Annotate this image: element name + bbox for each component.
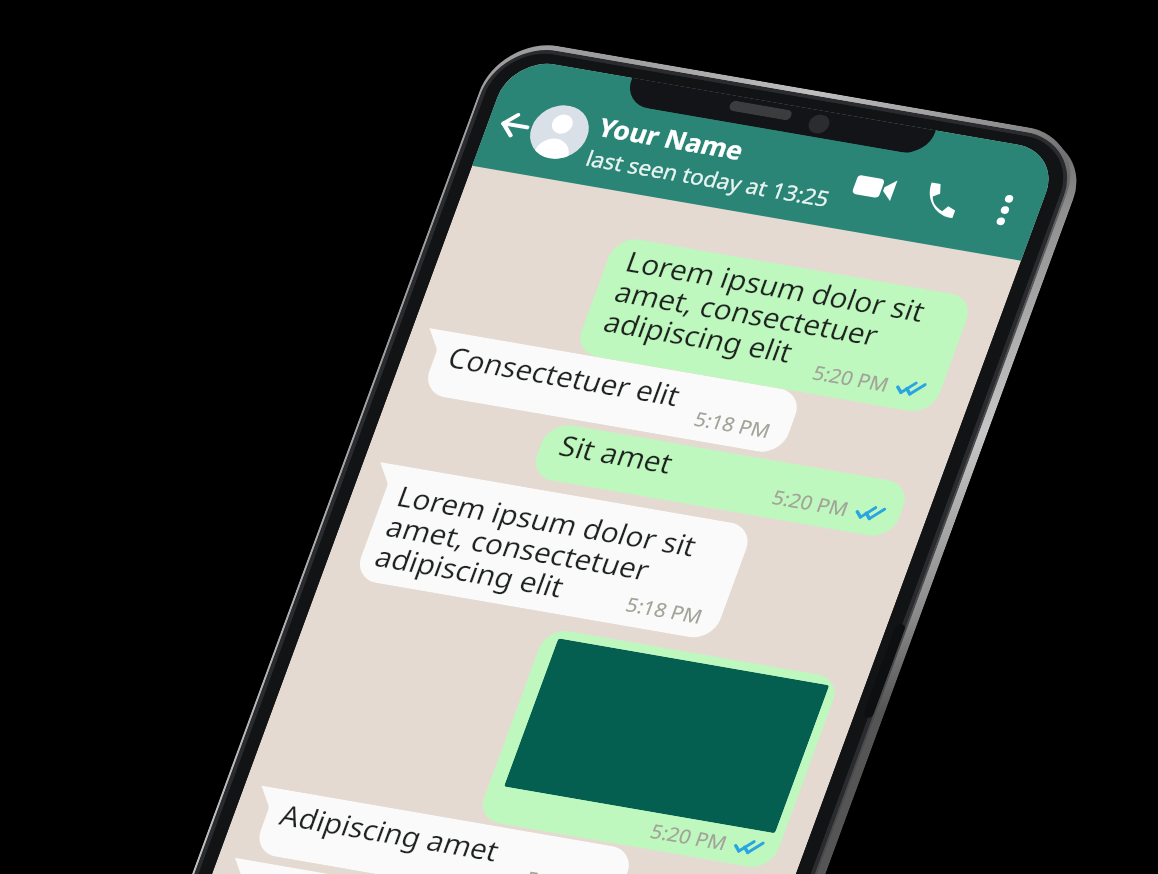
button[interactable]: Lorem ipsum dolor sit amet, consectetuer…	[534, 99, 1014, 551]
staticText: 5:18 PM	[614, 562, 716, 658]
staticText: Lorem ipsum dolor sit amet, consectetuer…	[337, 363, 735, 738]
staticText: Consectetuer elit	[431, 250, 698, 501]
button[interactable]: Sit amet	[510, 283, 930, 677]
button[interactable]: More options	[958, 165, 1052, 255]
button[interactable]: Voice call	[892, 154, 987, 243]
staticText: Lorem ipsum dolor sit amet, consectetuer…	[566, 129, 964, 504]
staticText: last seen today at 13:25	[573, 50, 844, 305]
button[interactable]: Video call	[826, 142, 920, 232]
staticText: 5:20 PM	[760, 455, 862, 551]
staticText: Your Name	[583, 54, 761, 222]
staticText: 5:20 PM	[800, 330, 902, 426]
staticText: 5:20 PM	[513, 836, 615, 874]
button[interactable]: Back	[471, 84, 558, 166]
staticText: Sit amet	[542, 383, 691, 524]
staticText: Adipiscing amet	[263, 713, 517, 874]
button[interactable]: Photo message	[411, 515, 906, 874]
staticText: Lorem ipsum	[236, 799, 453, 874]
staticText: 5:20 PM	[638, 789, 740, 874]
button[interactable]: Lorem ipsum dolor sit amet, consectetuer…	[300, 319, 793, 784]
staticText: 5:18 PM	[682, 377, 784, 473]
button[interactable]: Lorem ipsum	[189, 715, 631, 874]
button[interactable]: Profile photo	[504, 80, 614, 184]
button[interactable]: Consectetuer elit	[385, 185, 825, 598]
button[interactable]: Adipiscing amet	[216, 643, 657, 874]
